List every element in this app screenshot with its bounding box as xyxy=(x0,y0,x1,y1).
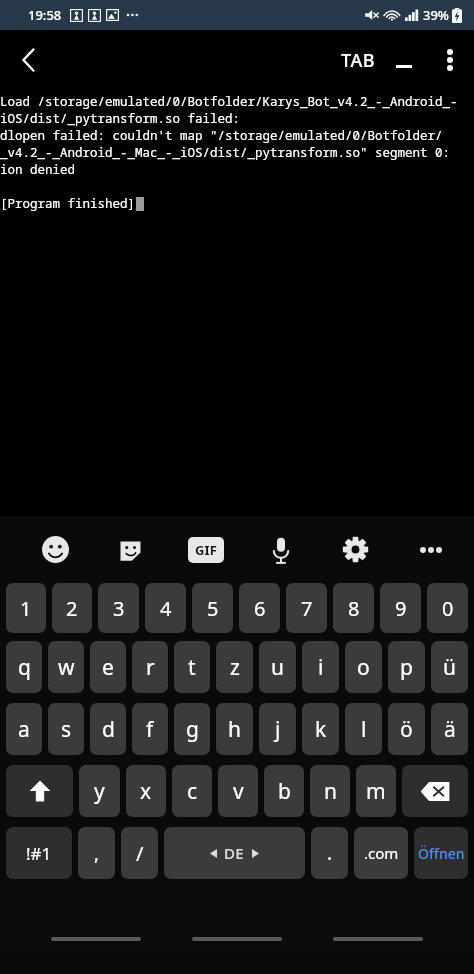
staticText: k xyxy=(315,715,327,744)
staticText: ä xyxy=(444,715,456,744)
button[interactable]: Emoji xyxy=(18,516,93,583)
button[interactable]: d xyxy=(90,703,126,755)
staticText: h xyxy=(228,715,241,744)
button[interactable]: ä xyxy=(431,703,468,755)
button[interactable]: u xyxy=(259,641,296,693)
button[interactable]: ö xyxy=(388,703,425,755)
button[interactable]: . xyxy=(311,827,348,879)
staticText: dlopen failed: couldn't map "/storage/em… xyxy=(0,127,474,144)
staticText: z xyxy=(230,653,240,682)
button[interactable]: z xyxy=(216,641,253,693)
staticText: e xyxy=(102,653,114,682)
staticText: f xyxy=(146,715,154,744)
staticText: GIF xyxy=(195,541,218,559)
button[interactable]: ü xyxy=(431,641,468,693)
button[interactable]: Back xyxy=(0,32,56,88)
staticText: w xyxy=(58,653,75,682)
button[interactable]: 8 xyxy=(333,583,374,633)
staticText: 6 xyxy=(254,595,266,622)
staticText: Öffnen xyxy=(418,844,465,863)
staticText: iOS/dist/_pytransform.so failed: xyxy=(0,110,241,127)
button[interactable]: Stickers xyxy=(93,516,168,583)
staticText: 3 xyxy=(113,595,125,622)
staticText: ü xyxy=(443,653,456,682)
button[interactable]: i xyxy=(302,641,339,693)
button[interactable]: 2 xyxy=(52,583,92,633)
button[interactable]: Minimize xyxy=(382,30,426,90)
staticText: c xyxy=(187,777,198,806)
button[interactable]: j xyxy=(259,703,296,755)
staticText: !#1 xyxy=(26,842,52,865)
staticText: m xyxy=(366,777,386,806)
button[interactable]: e xyxy=(90,641,126,693)
staticText: 9 xyxy=(395,595,407,622)
button[interactable]: p xyxy=(388,641,425,693)
staticText: s xyxy=(61,715,72,744)
button[interactable]: o xyxy=(345,641,382,693)
button[interactable]: !#1 xyxy=(6,827,72,879)
button[interactable]: More options xyxy=(426,30,474,90)
staticText: ion denied xyxy=(0,161,76,178)
button[interactable]: r xyxy=(132,641,168,693)
button[interactable]: y xyxy=(79,765,120,817)
staticText: d xyxy=(102,715,115,744)
button[interactable]: / xyxy=(121,827,158,879)
button[interactable]: g xyxy=(174,703,210,755)
button[interactable]: 3 xyxy=(98,583,139,633)
button[interactable]: s xyxy=(48,703,84,755)
staticText: g xyxy=(186,715,199,744)
button[interactable]: Shift xyxy=(6,765,73,817)
staticText: l xyxy=(361,715,367,744)
button[interactable]: 5 xyxy=(192,583,233,633)
button[interactable]: v xyxy=(218,765,258,817)
button[interactable]: b xyxy=(264,765,304,817)
button[interactable]: Voice input xyxy=(243,516,318,583)
staticText: v xyxy=(233,777,244,806)
button[interactable]: 4 xyxy=(145,583,186,633)
staticText: .com xyxy=(364,843,399,863)
staticText: 0 xyxy=(442,595,454,622)
staticText: 39% xyxy=(423,6,449,24)
button[interactable]: m xyxy=(356,765,396,817)
button[interactable]: 0 xyxy=(427,583,468,633)
staticText: x xyxy=(140,777,152,806)
button[interactable]: c xyxy=(172,765,212,817)
button[interactable]: f xyxy=(132,703,168,755)
button[interactable]: More xyxy=(393,516,468,583)
staticText: 19:58 xyxy=(28,6,62,24)
staticText: [Program finished] xyxy=(0,195,136,212)
staticText: 4 xyxy=(160,595,172,622)
button[interactable]: , xyxy=(78,827,115,879)
staticText: _v4.2_-_Android_-_Mac_-_iOS/dist/_pytran… xyxy=(0,144,474,161)
button[interactable]: k xyxy=(302,703,339,755)
button[interactable]: TAB xyxy=(335,30,382,90)
staticText: a xyxy=(18,715,30,744)
button[interactable]: l xyxy=(345,703,382,755)
button[interactable]: .com xyxy=(354,827,408,879)
button[interactable]: 6 xyxy=(239,583,280,633)
button[interactable]: GIF xyxy=(168,516,243,583)
button[interactable]: 1 xyxy=(6,583,46,633)
button[interactable]: Space xyxy=(164,827,305,879)
button[interactable]: Navigation xyxy=(51,937,141,941)
staticText: ö xyxy=(400,715,413,744)
button[interactable]: 9 xyxy=(380,583,421,633)
button[interactable]: x xyxy=(126,765,166,817)
button[interactable]: a xyxy=(6,703,42,755)
button[interactable]: q xyxy=(6,641,42,693)
button[interactable]: Keyboard settings xyxy=(318,516,393,583)
button[interactable]: 7 xyxy=(286,583,327,633)
button[interactable]: Backspace xyxy=(402,765,468,817)
staticText: Load /storage/emulated/0/Botfolder/Karys… xyxy=(0,93,474,110)
button[interactable]: Navigation xyxy=(192,937,282,941)
button[interactable]: t xyxy=(174,641,210,693)
button[interactable]: w xyxy=(48,641,84,693)
staticText: , xyxy=(94,840,100,866)
staticText: 7 xyxy=(301,595,313,622)
staticText: n xyxy=(324,777,337,806)
button[interactable]: Öffnen xyxy=(414,827,468,879)
button[interactable]: Navigation xyxy=(333,937,423,941)
button[interactable]: h xyxy=(216,703,253,755)
staticText: j xyxy=(275,715,281,744)
button[interactable]: n xyxy=(310,765,350,817)
